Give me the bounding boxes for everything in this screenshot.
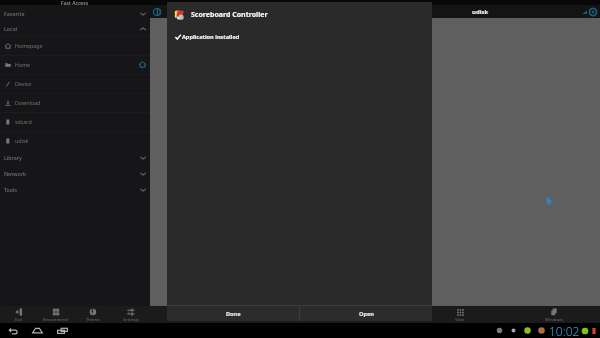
button[interactable]: Back xyxy=(5,323,21,338)
staticText: Network xyxy=(4,170,26,177)
button[interactable]: Download xyxy=(0,93,150,112)
button[interactable]: Record xyxy=(151,6,163,18)
staticText: Home xyxy=(15,61,31,68)
staticText: View xyxy=(455,317,465,323)
button[interactable]: Record xyxy=(587,6,599,18)
button[interactable]: Exit xyxy=(0,306,37,323)
button[interactable]: Open xyxy=(300,306,432,321)
button[interactable]: Homepage xyxy=(0,36,150,55)
button[interactable]: Windows xyxy=(534,306,574,323)
staticText: Recommend xyxy=(43,317,68,323)
staticText: Scoreboard Controller xyxy=(191,10,268,20)
staticText: Open xyxy=(359,310,374,318)
staticText: Local xyxy=(4,25,18,32)
staticText: Theme xyxy=(86,317,100,323)
button[interactable]: Network xyxy=(0,166,150,181)
staticText: Homepage xyxy=(15,42,43,49)
staticText: sdcard xyxy=(15,118,32,125)
button[interactable]: Theme xyxy=(74,306,112,323)
staticText: Fast Access xyxy=(61,0,89,5)
button[interactable]: Home xyxy=(0,55,150,74)
button[interactable]: udisk xyxy=(0,131,150,150)
button[interactable]: Recents xyxy=(54,323,70,338)
button[interactable]: Local xyxy=(0,21,150,36)
staticText: Windows xyxy=(545,317,563,323)
staticText: Tools xyxy=(4,186,18,193)
button[interactable]: View xyxy=(440,306,480,323)
staticText: Favorite xyxy=(4,10,25,17)
staticText: udisk xyxy=(472,8,489,16)
button[interactable]: Recommend xyxy=(37,306,74,323)
button[interactable]: Done xyxy=(167,306,299,321)
staticText: Done xyxy=(226,310,241,318)
staticText: Download xyxy=(15,99,41,106)
button[interactable]: sdcard xyxy=(0,112,150,131)
button[interactable]: Settings xyxy=(112,306,150,323)
staticText: udisk xyxy=(15,137,29,144)
staticText: 10:02 xyxy=(549,323,580,338)
button[interactable]: Device xyxy=(0,74,150,93)
staticText: Library xyxy=(4,154,22,161)
button[interactable]: Home xyxy=(29,323,45,338)
button[interactable]: Tools xyxy=(0,182,150,197)
button[interactable]: Library xyxy=(0,150,150,165)
button[interactable]: Favorite xyxy=(0,6,150,21)
staticText: Application installed xyxy=(182,33,240,41)
staticText: Exit xyxy=(15,317,23,323)
staticText: Settings xyxy=(123,317,139,323)
staticText: Device xyxy=(15,80,32,87)
